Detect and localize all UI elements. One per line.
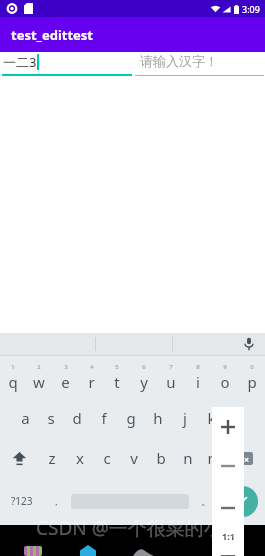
- staticText: a: [21, 408, 30, 428]
- staticText: 请输入汉字！: [140, 53, 218, 69]
- staticText: c: [103, 448, 111, 468]
- staticText: 3:09: [242, 3, 260, 15]
- staticText: p: [247, 372, 257, 392]
- button[interactable]: App two: [80, 545, 96, 556]
- staticText: 2: [37, 363, 41, 371]
- staticText: s: [47, 408, 55, 428]
- staticText: h: [153, 408, 163, 428]
- button[interactable]: Zoom in: [215, 414, 241, 440]
- staticText: t: [114, 372, 120, 392]
- staticText: z: [48, 448, 56, 468]
- button[interactable]: x: [66, 438, 93, 478]
- button[interactable]: App one: [24, 546, 42, 556]
- button[interactable]: Enter: [220, 478, 265, 524]
- button[interactable]: 9: [211, 356, 238, 398]
- staticText: k: [207, 408, 216, 428]
- button[interactable]: ，: [43, 478, 68, 524]
- button[interactable]: 0: [238, 356, 265, 398]
- button[interactable]: m: [201, 438, 228, 478]
- button[interactable]: h: [144, 398, 171, 438]
- staticText: n: [183, 448, 193, 468]
- staticText: ，: [51, 495, 61, 508]
- button[interactable]: 7: [157, 356, 184, 398]
- button[interactable]: 。: [192, 478, 220, 524]
- staticText: ?123: [11, 494, 33, 508]
- staticText: w: [33, 372, 45, 392]
- staticText: 7: [169, 363, 173, 371]
- staticText: x: [76, 448, 84, 468]
- button[interactable]: v: [120, 438, 147, 478]
- staticText: e: [61, 372, 70, 392]
- staticText: 9: [223, 363, 227, 371]
- button[interactable]: Voice input: [240, 335, 258, 353]
- staticText: 5: [115, 363, 119, 371]
- button[interactable]: 6: [130, 356, 157, 398]
- button[interactable]: App three: [133, 546, 154, 556]
- button[interactable]: 5: [104, 356, 130, 398]
- button[interactable]: 一二3: [0, 52, 134, 78]
- staticText: 0: [250, 363, 254, 371]
- button[interactable]: j: [171, 398, 198, 438]
- button[interactable]: b: [147, 438, 174, 478]
- staticText: f: [101, 408, 107, 428]
- button[interactable]: d: [64, 398, 90, 438]
- button[interactable]: 请输入汉字！: [134, 52, 265, 78]
- staticText: 6: [142, 363, 146, 371]
- staticText: b: [156, 448, 166, 468]
- staticText: u: [166, 372, 176, 392]
- button[interactable]: f: [90, 398, 117, 438]
- staticText: d: [72, 408, 82, 428]
- button[interactable]: z: [38, 438, 66, 478]
- staticText: r: [88, 372, 95, 392]
- button[interactable]: Space: [68, 478, 192, 524]
- staticText: 一二3: [3, 53, 37, 71]
- button[interactable]: 4: [78, 356, 104, 398]
- staticText: 。: [201, 495, 211, 508]
- button[interactable]: 1: [0, 356, 26, 398]
- staticText: j: [183, 408, 187, 428]
- staticText: v: [130, 448, 138, 468]
- staticText: g: [126, 408, 136, 428]
- staticText: i: [196, 372, 200, 392]
- staticText: 4: [90, 363, 94, 371]
- button[interactable]: s: [38, 398, 64, 438]
- staticText: o: [220, 372, 230, 392]
- staticText: ×: [244, 453, 250, 465]
- button[interactable]: c: [93, 438, 120, 478]
- staticText: y: [140, 372, 148, 392]
- staticText: 1:1: [222, 530, 235, 542]
- staticText: test_edittest: [11, 26, 93, 44]
- button[interactable]: 2: [26, 356, 52, 398]
- button[interactable]: g: [117, 398, 144, 438]
- button[interactable]: l: [225, 398, 252, 438]
- button[interactable]: Actual size: [215, 523, 241, 549]
- button[interactable]: ?123: [0, 478, 43, 524]
- button[interactable]: k: [198, 398, 225, 438]
- button[interactable]: Backspace: [228, 438, 265, 478]
- button[interactable]: 8: [184, 356, 211, 398]
- button[interactable]: 3: [52, 356, 78, 398]
- staticText: 3: [64, 363, 68, 371]
- staticText: CSDN @一个很菜的小猪: [36, 515, 242, 541]
- staticText: 8: [196, 363, 200, 371]
- button[interactable]: a: [12, 398, 38, 438]
- staticText: 1: [11, 363, 15, 371]
- staticText: q: [8, 372, 18, 392]
- button[interactable]: n: [174, 438, 201, 478]
- button[interactable]: Zoom out: [215, 453, 241, 479]
- staticText: m: [207, 448, 222, 468]
- button[interactable]: Collapse: [215, 495, 241, 521]
- button[interactable]: Shift: [0, 438, 38, 478]
